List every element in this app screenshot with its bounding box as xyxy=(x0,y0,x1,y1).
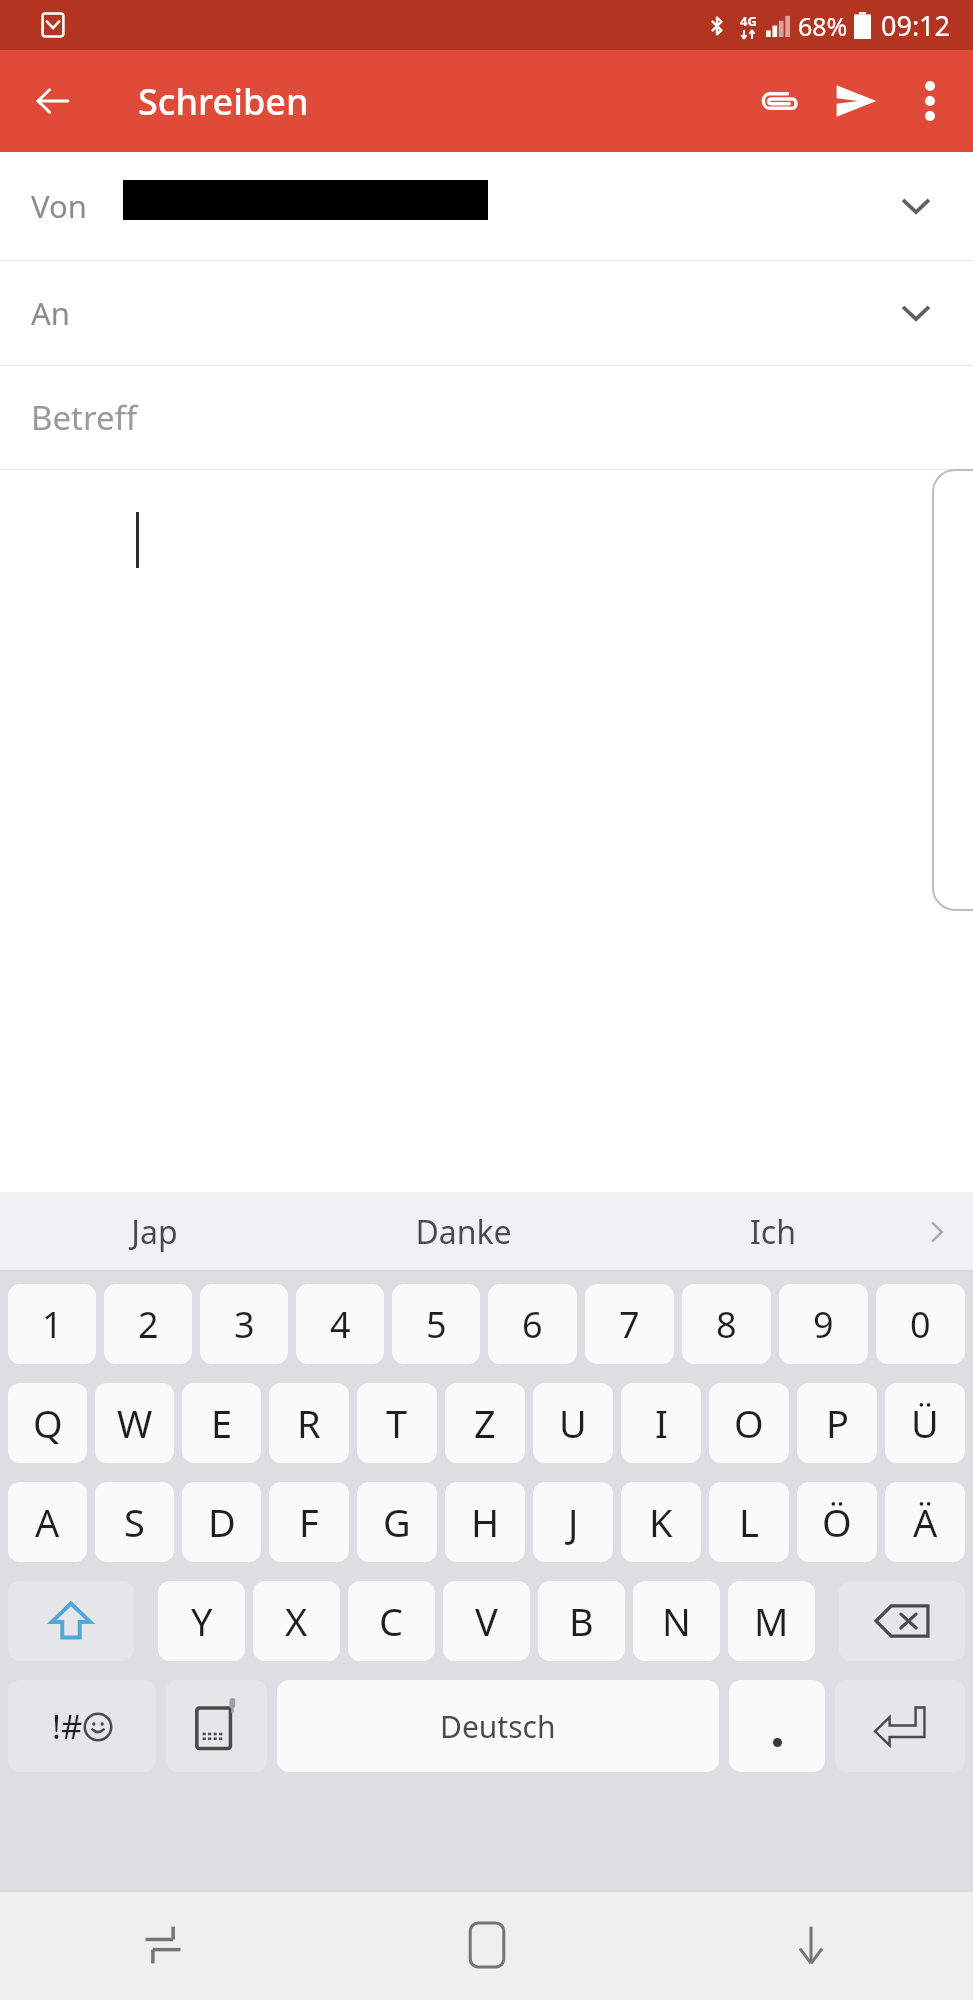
button[interactable]: Letzte Apps xyxy=(0,1890,325,2000)
staticText: !# xyxy=(52,1704,83,1749)
button[interactable]: Punkt xyxy=(729,1680,825,1772)
button[interactable]: G xyxy=(357,1482,437,1562)
button[interactable]: 9 xyxy=(779,1284,868,1364)
button[interactable]: T xyxy=(357,1383,437,1463)
button[interactable]: Ä xyxy=(885,1482,965,1562)
staticText: F xyxy=(299,1496,319,1548)
button[interactable]: W xyxy=(95,1383,174,1463)
button[interactable]: Tastatur wechseln xyxy=(166,1680,267,1772)
button[interactable]: U xyxy=(533,1383,613,1463)
staticText: K xyxy=(649,1496,673,1548)
button[interactable]: Ich xyxy=(618,1192,927,1272)
staticText: Betreff xyxy=(31,395,138,440)
staticText: An xyxy=(31,292,70,334)
button[interactable]: Rücktaste xyxy=(839,1581,965,1661)
staticText: 4G xyxy=(740,12,757,30)
button[interactable]: H xyxy=(445,1482,525,1562)
button[interactable]: 5 xyxy=(392,1284,480,1364)
button[interactable]: F xyxy=(269,1482,349,1562)
button[interactable]: I xyxy=(621,1383,701,1463)
button[interactable]: Jap xyxy=(0,1192,309,1272)
button[interactable]: E xyxy=(182,1383,261,1463)
staticText: O xyxy=(734,1397,764,1449)
button[interactable]: Umschalttaste xyxy=(8,1581,134,1661)
button[interactable]: 7 xyxy=(585,1284,674,1364)
button[interactable]: N xyxy=(633,1581,720,1661)
button[interactable]: Ö xyxy=(797,1482,877,1562)
staticText: 2 xyxy=(138,1300,159,1349)
staticText: 5 xyxy=(426,1300,447,1349)
button[interactable]: Ü xyxy=(885,1383,965,1463)
staticText: 6 xyxy=(522,1300,543,1349)
staticText: Z xyxy=(474,1397,496,1449)
button[interactable]: Z xyxy=(445,1383,525,1463)
staticText: A xyxy=(35,1496,60,1548)
staticText: 3 xyxy=(234,1300,255,1349)
staticText: Jap xyxy=(131,1210,178,1254)
button[interactable]: O xyxy=(709,1383,789,1463)
button[interactable]: Anhang hinzufügen xyxy=(739,62,817,140)
staticText: R xyxy=(297,1397,321,1449)
button[interactable]: 4 xyxy=(296,1284,384,1364)
button[interactable]: 8 xyxy=(682,1284,771,1364)
button[interactable]: 3 xyxy=(200,1284,288,1364)
staticText: Ö xyxy=(822,1496,852,1548)
staticText: Danke xyxy=(415,1210,512,1254)
button[interactable]: K xyxy=(621,1482,701,1562)
button[interactable]: L xyxy=(709,1482,789,1562)
button[interactable]: 2 xyxy=(104,1284,192,1364)
button[interactable]: A xyxy=(8,1482,87,1562)
button[interactable]: P xyxy=(797,1383,877,1463)
button[interactable] xyxy=(0,470,973,910)
button[interactable]: Betreff xyxy=(0,366,973,469)
button[interactable]: Y xyxy=(158,1581,245,1661)
button[interactable]: Eingabetaste xyxy=(835,1680,965,1772)
staticText: L xyxy=(739,1496,759,1548)
button[interactable]: Senden xyxy=(817,62,895,140)
button[interactable]: 0 xyxy=(876,1284,965,1364)
button[interactable]: Symbole und Emojis xyxy=(8,1680,156,1772)
button[interactable]: Weitere Vorschläge xyxy=(913,1208,961,1256)
button[interactable]: Weitere Optionen xyxy=(895,66,965,136)
button[interactable]: Von xyxy=(0,152,973,260)
button[interactable]: Startbildschirm xyxy=(325,1890,649,2000)
staticText: V xyxy=(475,1595,498,1647)
staticText: C xyxy=(379,1595,404,1647)
button[interactable]: D xyxy=(182,1482,261,1562)
button[interactable]: Zurück xyxy=(22,70,84,132)
staticText: Ü xyxy=(911,1397,939,1449)
staticText: T xyxy=(386,1397,408,1449)
button[interactable]: B xyxy=(538,1581,625,1661)
button[interactable]: Tastatur ausblenden xyxy=(649,1890,973,2000)
button[interactable]: Q xyxy=(8,1383,87,1463)
staticText: S xyxy=(124,1496,145,1548)
button[interactable]: X xyxy=(253,1581,340,1661)
staticText: M xyxy=(754,1595,789,1647)
staticText: U xyxy=(559,1397,587,1449)
staticText: X xyxy=(285,1595,308,1647)
staticText: 1 xyxy=(42,1300,63,1349)
button[interactable]: R xyxy=(269,1383,349,1463)
staticText: N xyxy=(662,1595,691,1647)
staticText: B xyxy=(569,1595,594,1647)
staticText: J xyxy=(568,1496,579,1548)
staticText: Deutsch xyxy=(440,1706,556,1747)
button[interactable]: 6 xyxy=(488,1284,577,1364)
button[interactable]: 1 xyxy=(8,1284,96,1364)
button[interactable]: J xyxy=(533,1482,613,1562)
button[interactable]: Deutsch xyxy=(277,1680,719,1772)
button[interactable]: C xyxy=(348,1581,435,1661)
button[interactable]: V xyxy=(443,1581,530,1661)
staticText: Ich xyxy=(750,1210,796,1254)
button[interactable]: M xyxy=(728,1581,815,1661)
button[interactable]: An xyxy=(0,261,973,365)
staticText: Von xyxy=(31,185,87,227)
staticText: 0 xyxy=(910,1300,931,1349)
button[interactable]: Danke xyxy=(309,1192,618,1272)
button[interactable]: S xyxy=(95,1482,174,1562)
staticText: Schreiben xyxy=(138,77,309,126)
staticText: W xyxy=(117,1397,153,1449)
staticText: G xyxy=(383,1496,411,1548)
staticText: I xyxy=(655,1397,668,1449)
staticText: 8 xyxy=(716,1300,737,1349)
